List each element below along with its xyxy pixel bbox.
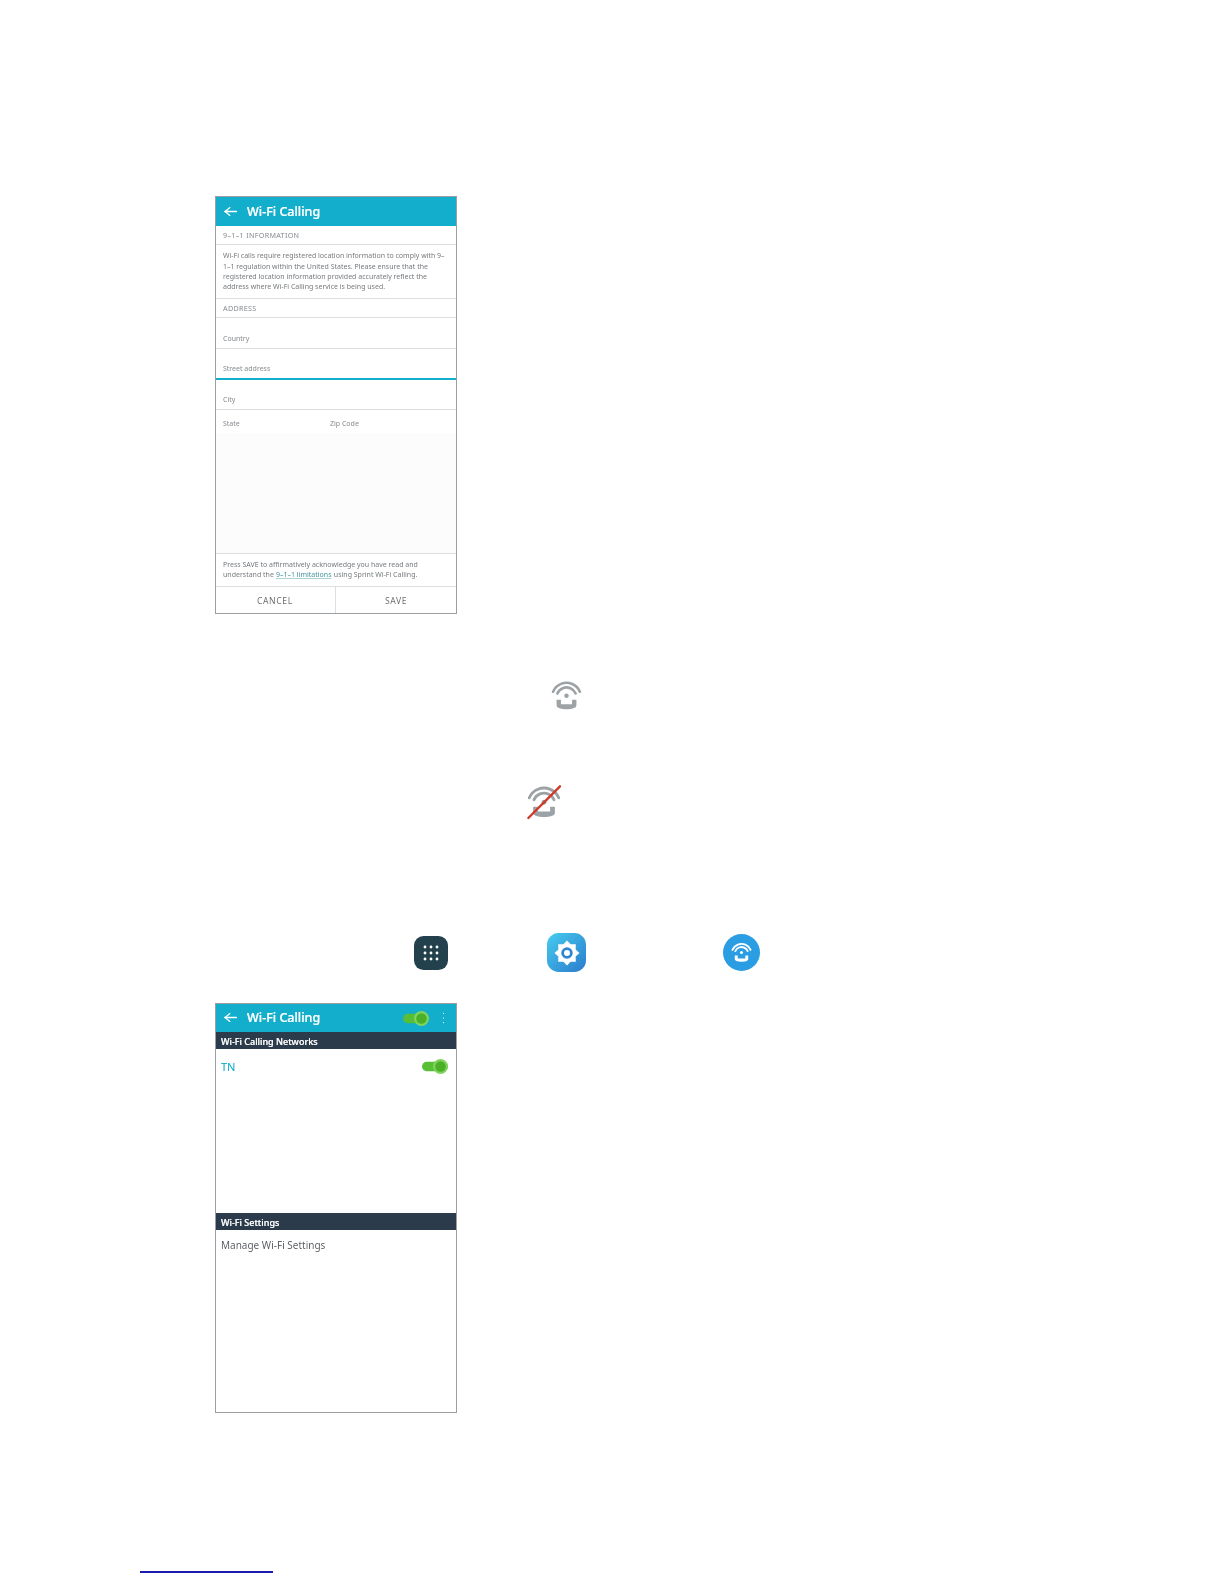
staticText: State xyxy=(223,419,240,429)
button[interactable]: City xyxy=(215,380,457,410)
button[interactable]: 9–1–1 limitations xyxy=(276,570,332,580)
button[interactable]: Wi-Fi Calling xyxy=(723,934,760,971)
staticText: Wi-Fi calls require registered location … xyxy=(223,251,450,291)
staticText: CANCEL xyxy=(257,595,293,607)
staticText: ADDRESS xyxy=(223,303,257,313)
staticText: City xyxy=(223,395,236,405)
staticText: Zip Code xyxy=(330,419,359,429)
button[interactable]: TN network on xyxy=(422,1059,448,1074)
staticText: Manage Wi-Fi Settings xyxy=(221,1238,326,1252)
button[interactable]: Back xyxy=(223,1010,238,1025)
other: Wi-Fi Calling available icon xyxy=(547,676,585,714)
staticText: TN xyxy=(221,1059,236,1074)
staticText: SAVE xyxy=(385,595,408,607)
button[interactable]: Street address xyxy=(215,349,457,380)
button[interactable]: TN xyxy=(215,1049,457,1083)
other: Wi-Fi Calling unavailable icon xyxy=(523,781,565,823)
button[interactable]: State xyxy=(215,410,457,433)
staticText: 9–1–1 INFORMATION xyxy=(223,230,300,240)
button[interactable]: Back xyxy=(223,204,238,219)
button[interactable]: Manage Wi-Fi Settings xyxy=(215,1230,457,1260)
button[interactable]: Apps xyxy=(414,936,448,970)
staticText: using Sprint Wi-Fi Calling. xyxy=(332,570,418,580)
staticText: Press SAVE to affirmatively acknowledge … xyxy=(223,560,418,570)
staticText: Country xyxy=(223,334,250,344)
button[interactable]: Back xyxy=(215,196,457,226)
staticText: understand the xyxy=(223,570,276,580)
staticText: Wi-Fi Calling xyxy=(247,1009,321,1026)
button[interactable]: CANCEL xyxy=(215,587,335,614)
button[interactable]: Settings xyxy=(547,933,586,972)
button[interactable]: More options xyxy=(434,1009,452,1027)
button[interactable]: Back xyxy=(215,1003,457,1032)
staticText: Wi-Fi Settings xyxy=(221,1216,280,1228)
staticText: Street address xyxy=(223,364,271,374)
staticText: Wi-Fi Calling Networks xyxy=(221,1035,318,1047)
button[interactable]: SAVE xyxy=(336,587,457,614)
staticText: Wi-Fi Calling xyxy=(247,203,321,220)
button[interactable]: Wi-Fi Calling on xyxy=(401,1007,431,1029)
button[interactable]: Country xyxy=(215,318,457,349)
